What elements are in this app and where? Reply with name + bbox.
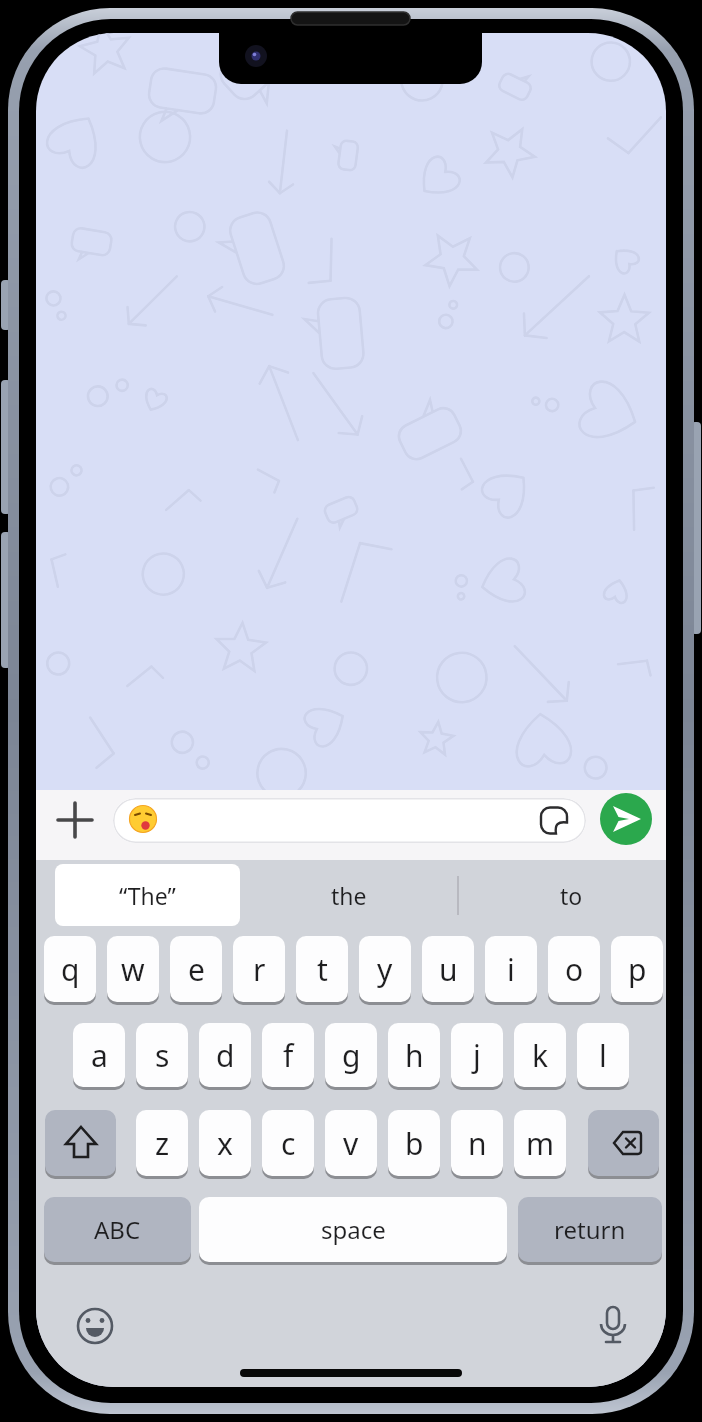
staticText: ABC — [94, 1213, 141, 1246]
staticText: x — [217, 1123, 233, 1164]
staticText: d — [216, 1035, 235, 1076]
button[interactable]: l — [577, 1023, 629, 1087]
staticText: “The” — [119, 880, 176, 911]
button[interactable]: s — [136, 1023, 188, 1087]
button[interactable]: space — [199, 1197, 507, 1262]
button[interactable]: d — [199, 1023, 251, 1087]
button[interactable]: c — [262, 1110, 314, 1176]
button[interactable]: m — [514, 1110, 566, 1176]
button[interactable]: ABC — [44, 1197, 191, 1262]
button[interactable] — [45, 1110, 116, 1176]
staticText: n — [468, 1123, 487, 1164]
staticText: f — [283, 1035, 294, 1076]
staticText: space — [321, 1213, 386, 1246]
staticText: z — [155, 1123, 170, 1164]
button[interactable]: b — [388, 1110, 440, 1176]
staticText: to — [560, 880, 583, 911]
button[interactable]: f — [262, 1023, 314, 1087]
staticText: g — [342, 1035, 361, 1076]
staticText: y — [377, 949, 393, 990]
button[interactable]: q — [44, 936, 96, 1002]
staticText: p — [628, 949, 647, 990]
button[interactable]: n — [451, 1110, 503, 1176]
button[interactable]: to — [476, 864, 666, 926]
staticText: w — [121, 949, 145, 990]
staticText: the — [331, 880, 367, 911]
button[interactable]: y — [359, 936, 411, 1002]
button[interactable] — [113, 798, 586, 843]
button[interactable] — [74, 1305, 116, 1347]
button[interactable]: k — [514, 1023, 566, 1087]
staticText: c — [281, 1123, 296, 1164]
button[interactable]: “The” — [55, 864, 240, 926]
button[interactable]: z — [136, 1110, 188, 1176]
button[interactable]: a — [73, 1023, 125, 1087]
button[interactable]: i — [485, 936, 537, 1002]
staticText: k — [532, 1035, 549, 1076]
button[interactable] — [588, 1110, 659, 1176]
staticText: u — [439, 949, 458, 990]
staticText: s — [155, 1035, 170, 1076]
staticText: i — [507, 949, 515, 990]
button[interactable]: o — [548, 936, 600, 1002]
staticText: t — [317, 949, 328, 990]
button[interactable] — [58, 803, 92, 837]
staticText: b — [405, 1123, 424, 1164]
button[interactable]: h — [388, 1023, 440, 1087]
button[interactable]: e — [170, 936, 222, 1002]
button[interactable]: p — [611, 936, 663, 1002]
button[interactable]: r — [233, 936, 285, 1002]
button[interactable]: w — [107, 936, 159, 1002]
staticText: l — [599, 1035, 607, 1076]
staticText: q — [61, 949, 80, 990]
button[interactable]: the — [254, 864, 444, 926]
staticText: r — [253, 949, 266, 990]
staticText: e — [188, 949, 205, 990]
button[interactable]: v — [325, 1110, 377, 1176]
button[interactable] — [592, 1303, 634, 1345]
staticText: m — [526, 1123, 555, 1164]
staticText: a — [91, 1035, 108, 1076]
button[interactable]: u — [422, 936, 474, 1002]
staticText: v — [343, 1123, 359, 1164]
button[interactable] — [600, 793, 652, 845]
staticText: o — [565, 949, 584, 990]
staticText: return — [554, 1213, 626, 1246]
button[interactable]: x — [199, 1110, 251, 1176]
button[interactable]: j — [451, 1023, 503, 1087]
button[interactable]: g — [325, 1023, 377, 1087]
staticText: j — [473, 1035, 481, 1076]
button[interactable]: t — [296, 936, 348, 1002]
button[interactable]: return — [518, 1197, 662, 1262]
staticText: h — [405, 1035, 424, 1076]
